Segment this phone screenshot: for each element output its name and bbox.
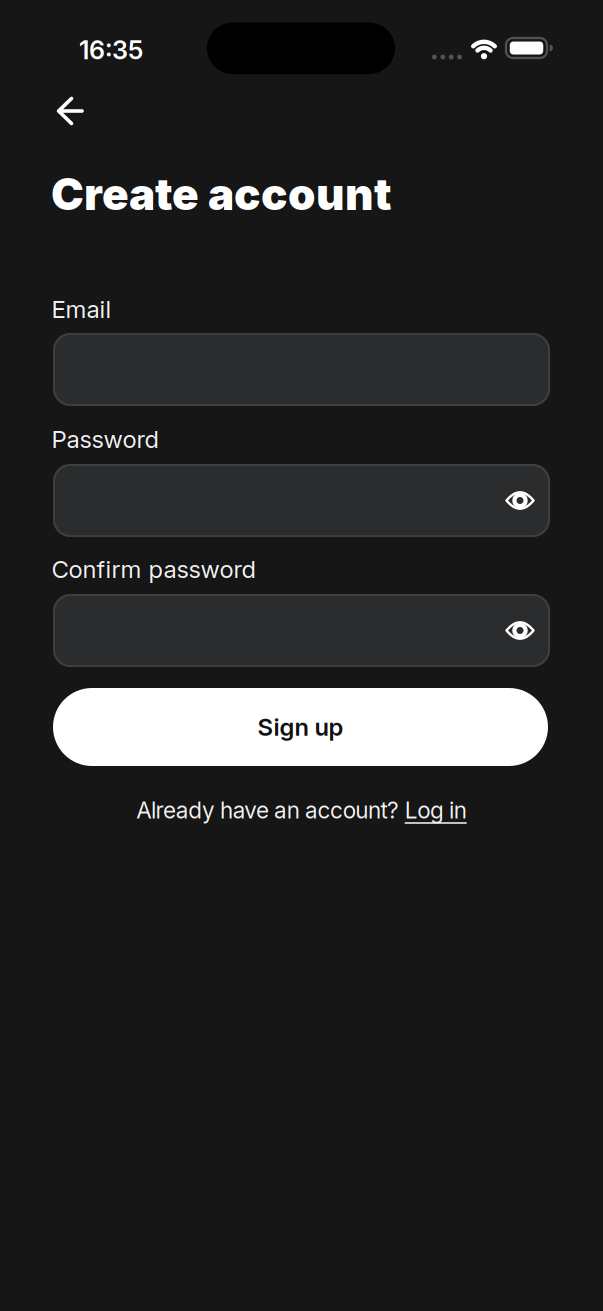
staticText: Sign up — [257, 713, 343, 741]
staticText: Log in — [405, 797, 467, 824]
button[interactable]: Show password — [503, 617, 537, 643]
staticText: Confirm password — [51, 555, 255, 583]
staticText: Already have an account? — [136, 797, 405, 824]
button[interactable]: Sign up — [53, 688, 548, 766]
staticText: Email — [51, 295, 111, 323]
staticText: 16:35 — [79, 35, 143, 65]
staticText: Create account — [51, 168, 392, 220]
button[interactable]: Back — [44, 86, 98, 136]
button[interactable]: Log in — [405, 797, 467, 824]
button[interactable]: Show password — [503, 487, 537, 513]
staticText: Password — [51, 425, 158, 453]
